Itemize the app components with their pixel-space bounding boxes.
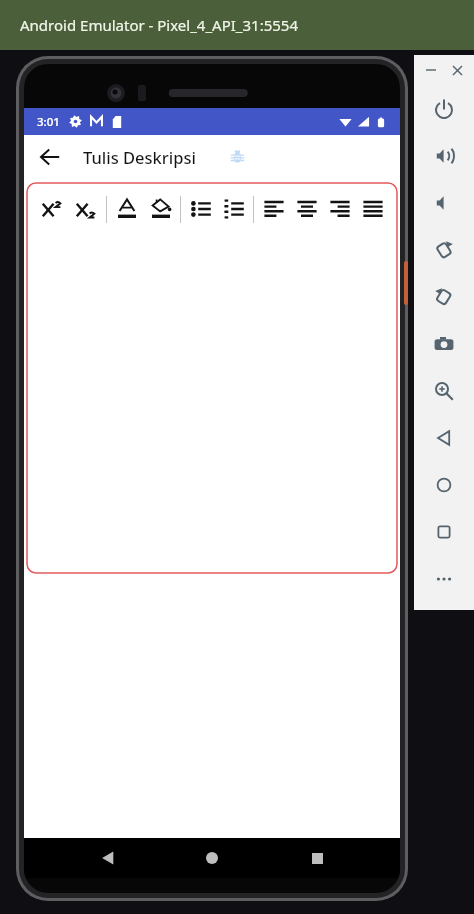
button[interactable]: Text color [110, 183, 144, 235]
button[interactable]: Numbered list [217, 183, 250, 235]
button[interactable]: Power [414, 85, 474, 132]
button[interactable]: Home [191, 838, 233, 878]
button[interactable]: Back [31, 138, 69, 176]
button[interactable]: Recents [296, 838, 338, 878]
button[interactable]: Screenshot [414, 320, 474, 367]
button[interactable]: Volume up [414, 132, 474, 179]
button[interactable]: Volume down [414, 179, 474, 226]
button[interactable]: Bulleted list [184, 183, 217, 235]
button[interactable]: Back [414, 414, 474, 461]
button[interactable]: Rotate left [414, 226, 474, 273]
button[interactable]: Justify [356, 183, 389, 235]
button[interactable]: Minimize [421, 60, 441, 80]
button[interactable]: Align center [290, 183, 323, 235]
button[interactable]: Align right [323, 183, 356, 235]
button[interactable]: Subscript [69, 183, 103, 235]
button[interactable]: More [414, 555, 474, 602]
staticText: Tulis Deskripsi [83, 146, 196, 168]
button[interactable]: Close [447, 60, 467, 80]
button[interactable]: Zoom [414, 367, 474, 414]
button[interactable]: Superscript [35, 183, 69, 235]
button[interactable]: Rotate right [414, 273, 474, 320]
button[interactable]: Fill color [144, 183, 177, 235]
button[interactable]: Home [414, 461, 474, 508]
button[interactable]: Back [87, 838, 129, 878]
button[interactable]: Debug [224, 144, 250, 170]
button[interactable]: Align left [257, 183, 290, 235]
staticText: Android Emulator - Pixel_4_API_31:5554 [20, 15, 298, 35]
staticText: 3:01 [37, 114, 60, 130]
button[interactable]: Overview [414, 508, 474, 555]
